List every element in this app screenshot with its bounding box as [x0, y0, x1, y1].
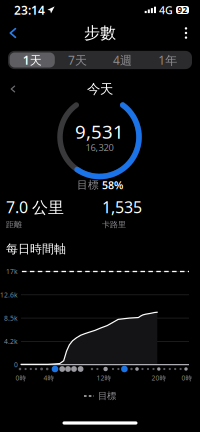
- staticText: 每日時間軸: [6, 242, 66, 256]
- button[interactable]: 7天: [55, 52, 100, 67]
- staticText: 8.5k: [4, 314, 18, 323]
- button[interactable]: Previous day: [4, 80, 22, 98]
- staticText: 23:14: [14, 2, 45, 18]
- staticText: 0時: [15, 374, 26, 382]
- staticText: 9,531: [75, 119, 124, 144]
- staticText: 4時: [43, 374, 54, 382]
- staticText: 1天: [23, 52, 42, 68]
- staticText: 16,320: [85, 141, 113, 154]
- staticText: 4週: [113, 52, 132, 68]
- button[interactable]: 1天: [10, 52, 55, 67]
- staticText: 7.0 公里: [6, 196, 64, 218]
- staticText: 4G: [159, 3, 173, 17]
- staticText: 步數: [84, 23, 116, 43]
- staticText: 20時: [151, 374, 166, 382]
- staticText: 92: [177, 5, 187, 15]
- staticText: 17k: [6, 267, 18, 276]
- staticText: 7天: [68, 52, 87, 68]
- staticText: 1年: [158, 52, 177, 68]
- staticText: 卡路里: [102, 220, 126, 229]
- button[interactable]: 4週: [100, 52, 145, 67]
- staticText: 目標: [98, 390, 116, 402]
- staticText: 0時: [181, 374, 192, 382]
- staticText: 距離: [6, 220, 22, 229]
- button[interactable]: 1年: [145, 52, 190, 67]
- staticText: 12.6k: [0, 290, 18, 299]
- button[interactable]: More options: [174, 21, 198, 45]
- staticText: 58%: [102, 178, 123, 192]
- staticText: 目標: [77, 178, 99, 191]
- staticText: 1,535: [102, 196, 142, 218]
- staticText: 今天: [87, 81, 113, 97]
- staticText: 4.2k: [4, 337, 18, 346]
- button[interactable]: Back: [0, 20, 26, 46]
- staticText: 0: [14, 360, 18, 369]
- staticText: 12時: [96, 374, 111, 382]
